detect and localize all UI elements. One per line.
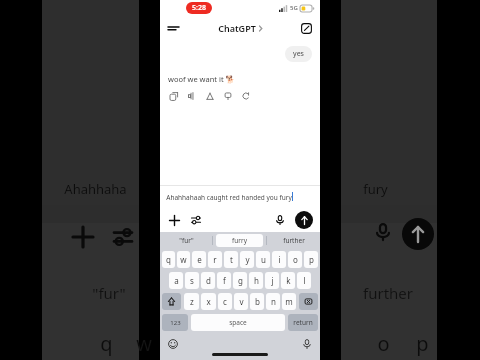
button[interactable]: g [233, 272, 247, 289]
button[interactable]: y [240, 251, 254, 268]
staticText: furry [232, 236, 247, 245]
button[interactable]: o [288, 251, 302, 268]
staticText: k [286, 275, 291, 286]
button[interactable]: v [234, 293, 248, 310]
staticText: z [190, 296, 194, 307]
staticText: u [261, 254, 266, 265]
button[interactable]: Good response [204, 90, 215, 101]
button[interactable]: Read aloud [186, 90, 197, 101]
staticText: fury [363, 180, 388, 198]
button[interactable]: l [297, 272, 311, 289]
staticText: a [174, 275, 179, 286]
button[interactable]: Shift [162, 293, 181, 310]
button[interactable]: space [191, 314, 285, 331]
button[interactable]: Copy [168, 90, 179, 101]
staticText: o [377, 330, 390, 357]
staticText: "fur" [92, 283, 126, 303]
staticText: i [278, 254, 281, 265]
button[interactable]: z [184, 293, 199, 310]
button[interactable]: Bad response [222, 90, 233, 101]
button[interactable]: f [217, 272, 231, 289]
button[interactable]: Menu [164, 19, 182, 37]
button[interactable]: Attach [165, 211, 183, 229]
button[interactable]: p [304, 251, 318, 268]
staticText: n [271, 296, 276, 307]
button[interactable]: Voice input [272, 212, 288, 228]
button[interactable]: w [177, 251, 190, 268]
button[interactable]: d [201, 272, 215, 289]
staticText: t [230, 254, 233, 265]
button[interactable]: i [272, 251, 286, 268]
button[interactable]: Send [295, 211, 313, 229]
button[interactable]: e [192, 251, 206, 268]
staticText: o [293, 254, 298, 265]
button[interactable]: x [201, 293, 216, 310]
button[interactable]: New chat [297, 19, 315, 37]
staticText: c [223, 296, 227, 307]
button[interactable]: ChatGPT [218, 22, 263, 34]
staticText: w [180, 254, 187, 265]
button[interactable]: r [208, 251, 222, 268]
button[interactable]: further [270, 234, 317, 247]
staticText: q [166, 254, 171, 265]
staticText: space [229, 318, 247, 327]
button[interactable]: h [249, 272, 263, 289]
button[interactable]: yes [285, 46, 312, 62]
button[interactable]: "fur" [163, 234, 209, 247]
staticText: r [213, 254, 217, 265]
staticText: h [254, 275, 259, 286]
staticText: 5G [290, 4, 298, 12]
button[interactable]: Ahahhahaah caught red handed you fury [160, 186, 320, 208]
staticText: Ahahhaha [64, 180, 127, 198]
staticText: q [100, 330, 113, 357]
button[interactable]: k [281, 272, 295, 289]
button[interactable]: q [162, 251, 175, 268]
button[interactable]: t [224, 251, 238, 268]
button[interactable]: u [256, 251, 270, 268]
staticText: v [239, 296, 244, 307]
staticText: w [136, 330, 152, 357]
staticText: "fur" [179, 236, 194, 245]
button[interactable]: m [282, 293, 296, 310]
button[interactable]: Tools [187, 211, 205, 229]
staticText: p [309, 254, 314, 265]
button[interactable]: 123 [162, 314, 188, 331]
staticText: Ahahhahaah caught red handed you fury [166, 193, 292, 202]
staticText: further [283, 236, 305, 245]
button[interactable]: Backspace [299, 293, 318, 310]
staticText: 123 [170, 319, 181, 327]
button[interactable]: b [250, 293, 264, 310]
button[interactable]: c [218, 293, 232, 310]
button[interactable]: return [288, 314, 318, 331]
staticText: e [197, 254, 202, 265]
staticText: m [285, 296, 293, 307]
button[interactable]: Dictate [300, 337, 314, 351]
staticText: s [190, 275, 194, 286]
staticText: further [363, 283, 413, 303]
staticText: p [416, 330, 429, 357]
button[interactable]: s [185, 272, 199, 289]
staticText: d [206, 275, 211, 286]
button[interactable]: a [169, 272, 183, 289]
button[interactable]: furry [216, 234, 263, 247]
staticText: g [238, 275, 243, 286]
staticText: ChatGPT [218, 22, 256, 34]
button[interactable]: j [265, 272, 279, 289]
staticText: 5:28 [192, 3, 206, 13]
staticText: y [245, 254, 250, 265]
staticText: b [255, 296, 260, 307]
staticText: x [206, 296, 211, 307]
staticText: woof we want it 🐕 [168, 74, 235, 84]
staticText: yes [293, 49, 304, 59]
staticText: l [303, 275, 306, 286]
staticText: j [271, 275, 274, 286]
staticText: return [293, 318, 313, 327]
button[interactable]: n [266, 293, 280, 310]
staticText: f [223, 275, 226, 286]
button[interactable]: Emoji [166, 337, 180, 351]
button[interactable]: Regenerate [240, 90, 251, 101]
